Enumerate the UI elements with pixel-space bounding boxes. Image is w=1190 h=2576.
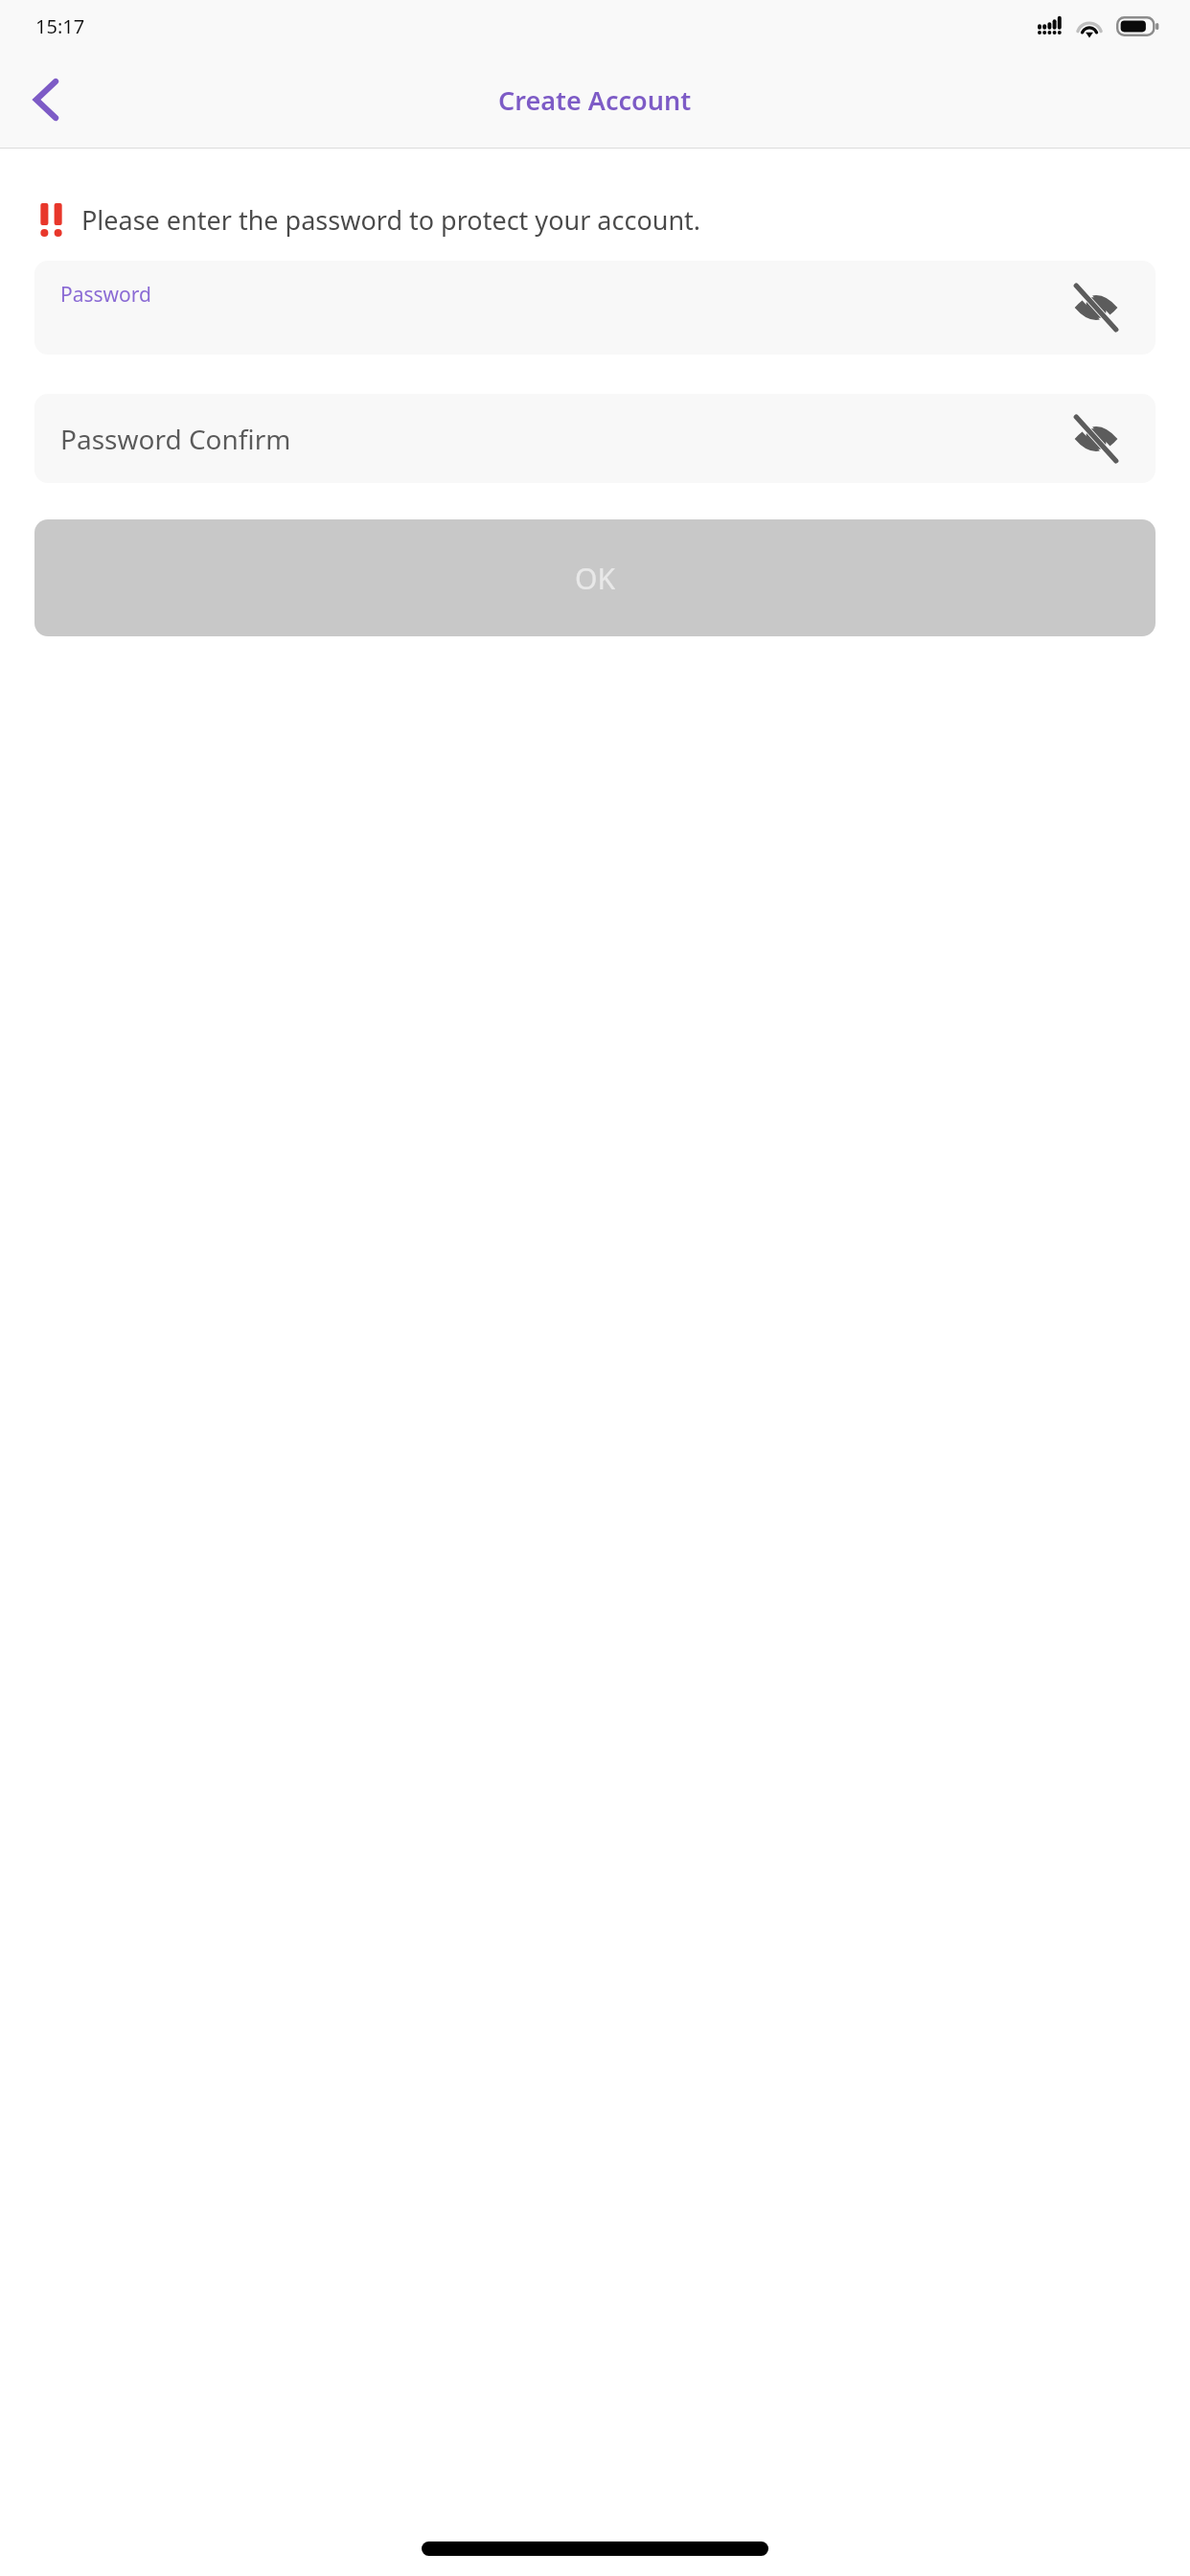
button[interactable]: Password	[34, 261, 1156, 355]
staticText: 15:17	[35, 13, 85, 39]
button[interactable]: Show password	[1062, 404, 1131, 473]
staticText: Password	[60, 281, 151, 309]
staticText: Password Confirm	[60, 421, 291, 457]
staticText: Create Account	[498, 82, 692, 118]
staticText: Please enter the password to protect you…	[81, 202, 701, 238]
staticText: OK	[575, 559, 615, 598]
button[interactable]: Show password	[1062, 273, 1131, 342]
button[interactable]: OK	[34, 519, 1156, 636]
button[interactable]: Password Confirm	[34, 394, 1156, 483]
button[interactable]: Back	[10, 63, 82, 136]
